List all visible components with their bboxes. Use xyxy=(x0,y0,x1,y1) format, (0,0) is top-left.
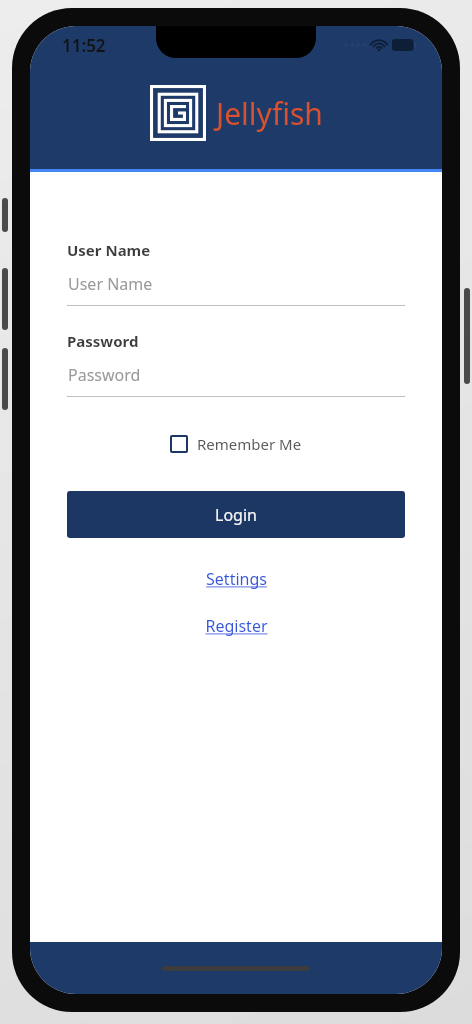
button[interactable]: User Name xyxy=(67,273,405,306)
staticText: User Name xyxy=(68,273,153,295)
staticText: Password xyxy=(67,331,139,351)
button[interactable]: Register xyxy=(195,610,278,642)
staticText: Login xyxy=(215,504,257,526)
staticText: Remember Me xyxy=(197,434,302,454)
staticText: Password xyxy=(68,364,141,386)
button[interactable]: Remember Me xyxy=(166,430,306,458)
button[interactable]: Password xyxy=(67,364,405,397)
staticText: 11:52 xyxy=(62,34,106,57)
button[interactable]: Login xyxy=(67,491,405,538)
staticText: User Name xyxy=(67,240,151,260)
staticText: Register xyxy=(205,615,268,637)
other: Jellyfish logo xyxy=(150,85,206,141)
staticText: Jellyfish xyxy=(216,93,323,134)
button[interactable]: Settings xyxy=(196,563,277,595)
staticText: Settings xyxy=(206,568,267,590)
